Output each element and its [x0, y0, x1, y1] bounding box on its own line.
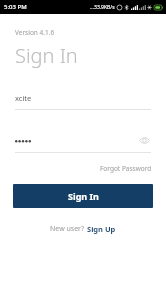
staticText: Sign In	[68, 190, 99, 202]
button[interactable]: xcite	[15, 93, 151, 110]
button[interactable]: Show password	[15, 133, 151, 153]
staticText: Sign Up	[87, 224, 116, 234]
button[interactable]: Sign In	[13, 184, 153, 208]
staticText: ...33.9KB/s	[90, 4, 115, 11]
staticText: 5:03 PM	[4, 3, 27, 11]
staticText: Sign In	[15, 42, 78, 69]
staticText: Version 4.1.6	[15, 28, 55, 37]
staticText: New user?	[50, 224, 86, 234]
button[interactable]: Show password	[137, 133, 151, 147]
button[interactable]: Forgot Password	[100, 162, 166, 175]
button[interactable]: Sign Up	[86, 222, 117, 236]
staticText: xcite	[15, 93, 32, 103]
staticText: Forgot Password	[100, 164, 152, 173]
